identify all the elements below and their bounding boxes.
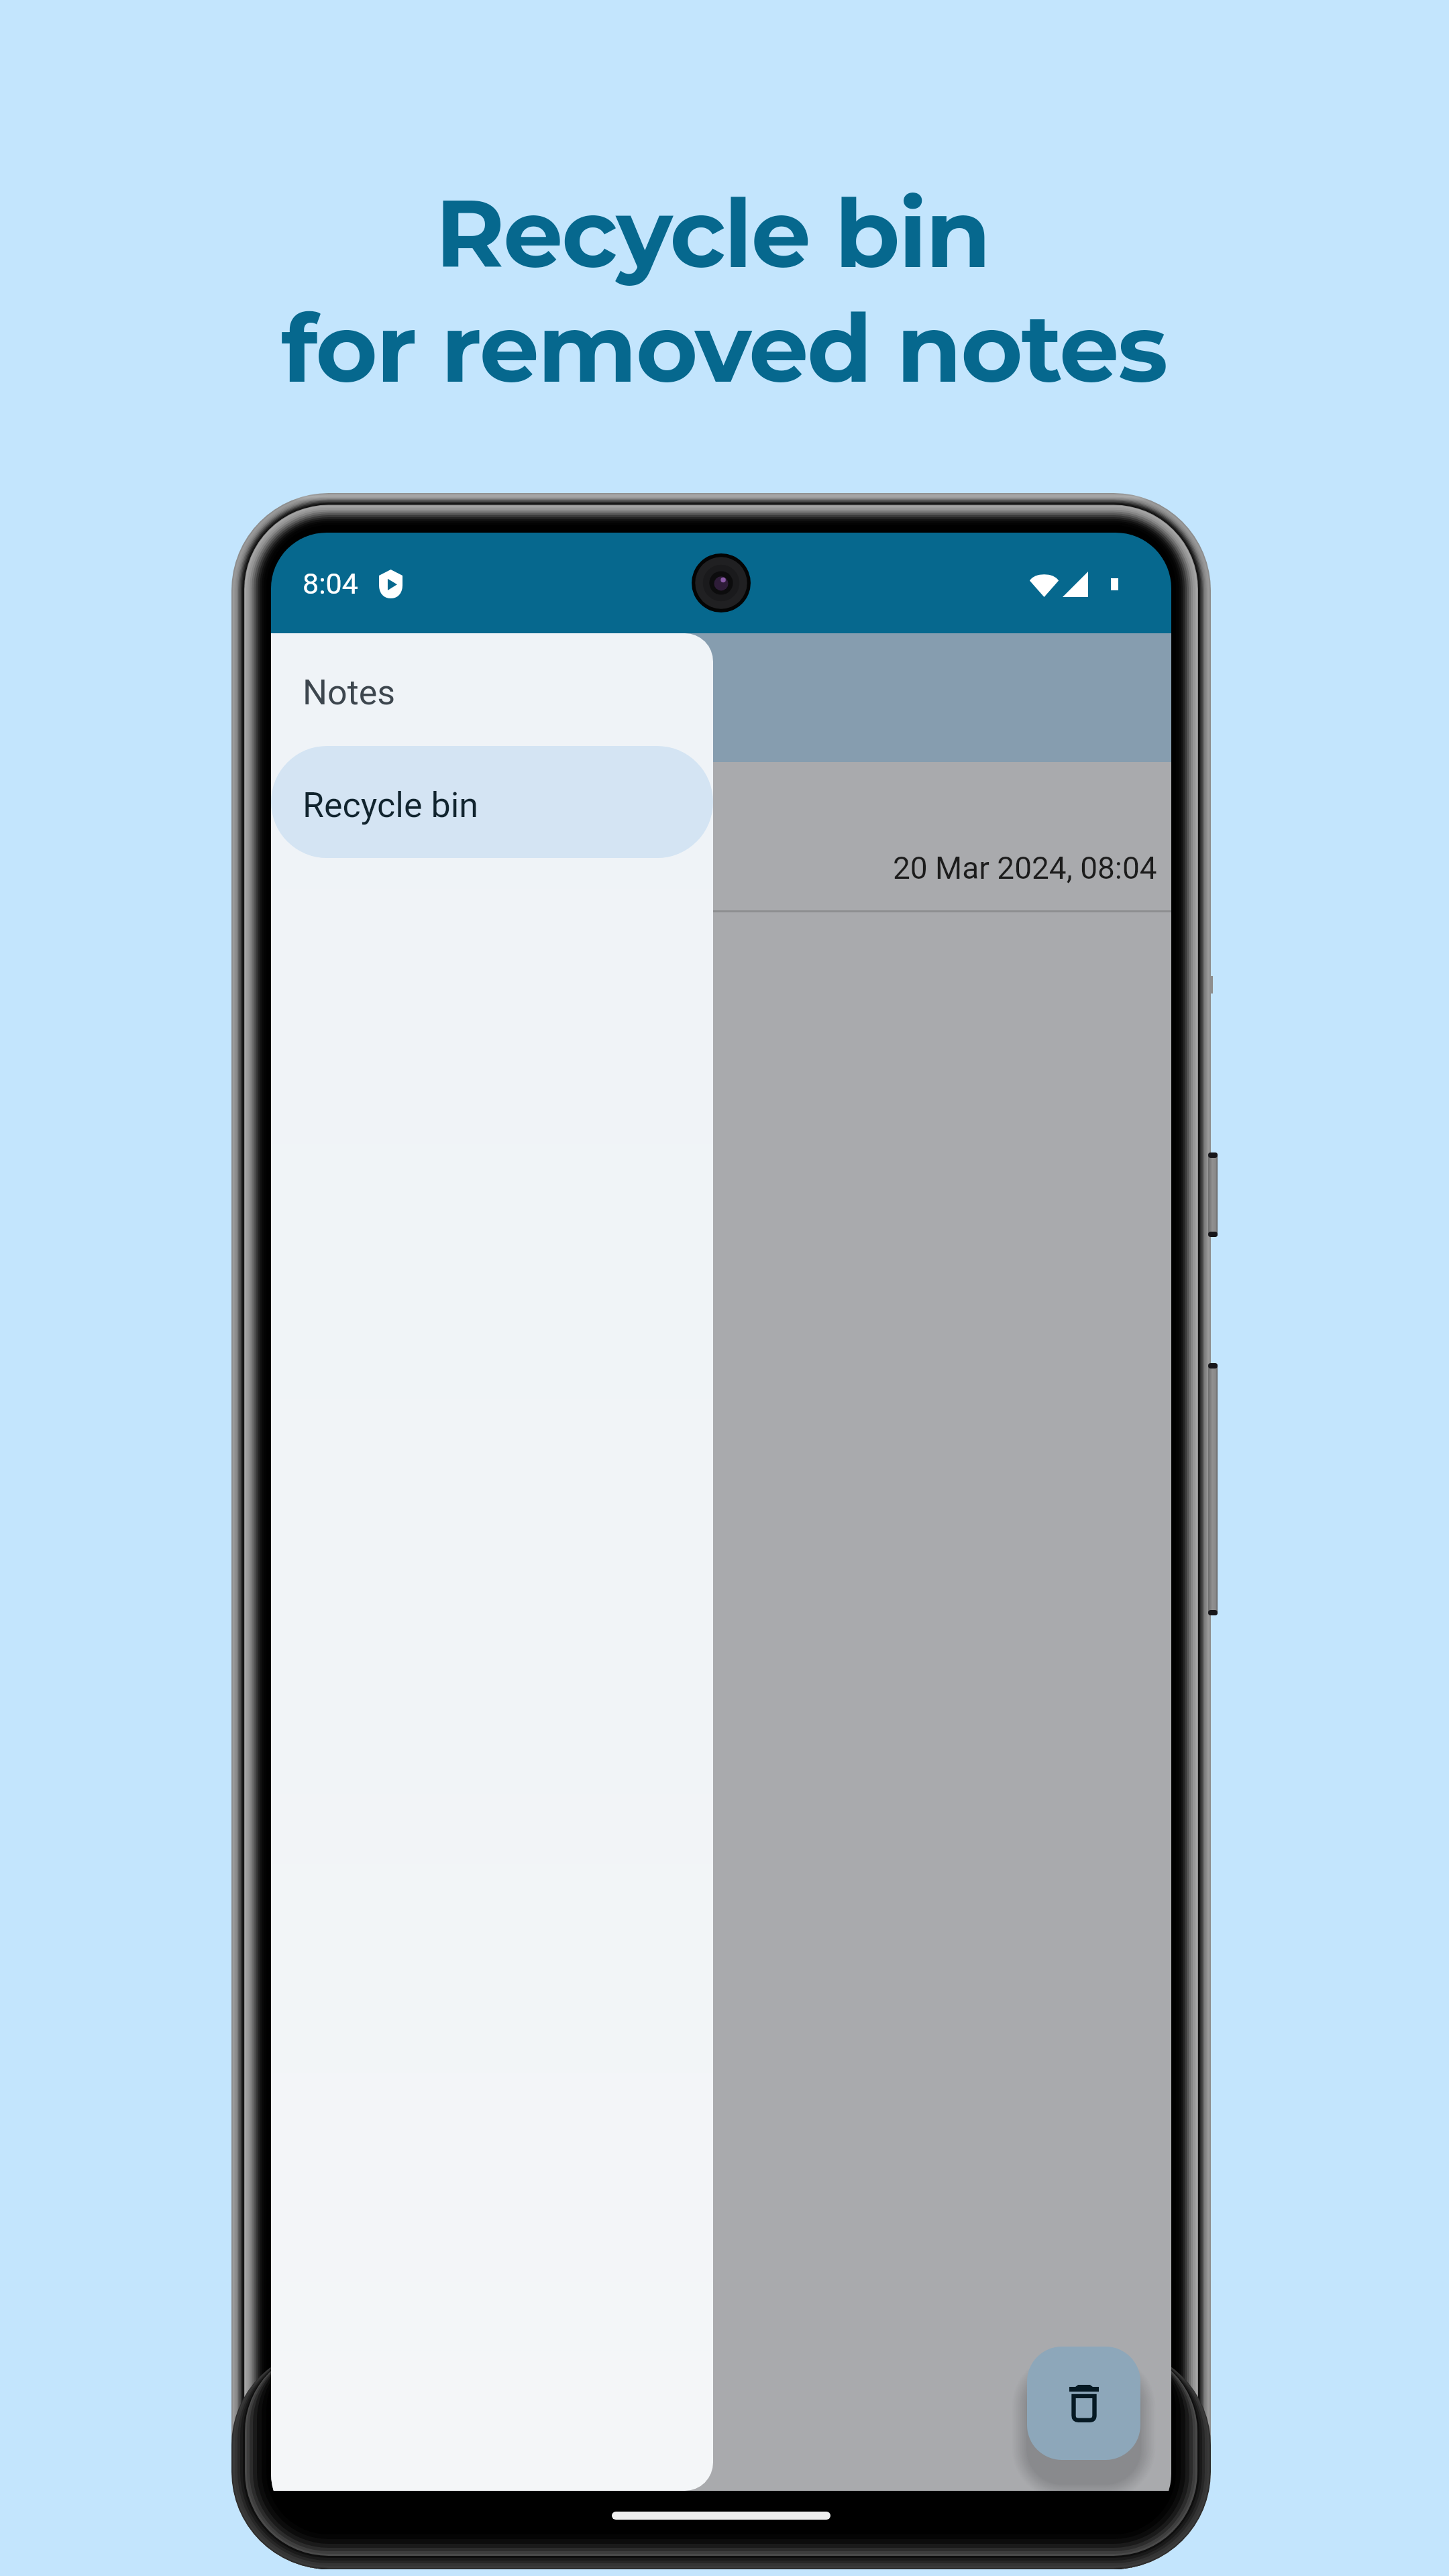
staticText: Recycle bin (303, 785, 479, 826)
button[interactable]: Recycle bin (271, 746, 713, 858)
staticText: 8:04 (303, 567, 358, 600)
staticText: Notes (303, 672, 396, 713)
staticText: Recycle bin (0, 176, 1437, 291)
button[interactable]: Notes (271, 633, 713, 746)
staticText: 20 Mar 2024, 08:04 (893, 850, 1157, 886)
staticText: for removed notes (0, 290, 1448, 406)
button[interactable]: Empty recycle bin (1027, 2347, 1140, 2460)
